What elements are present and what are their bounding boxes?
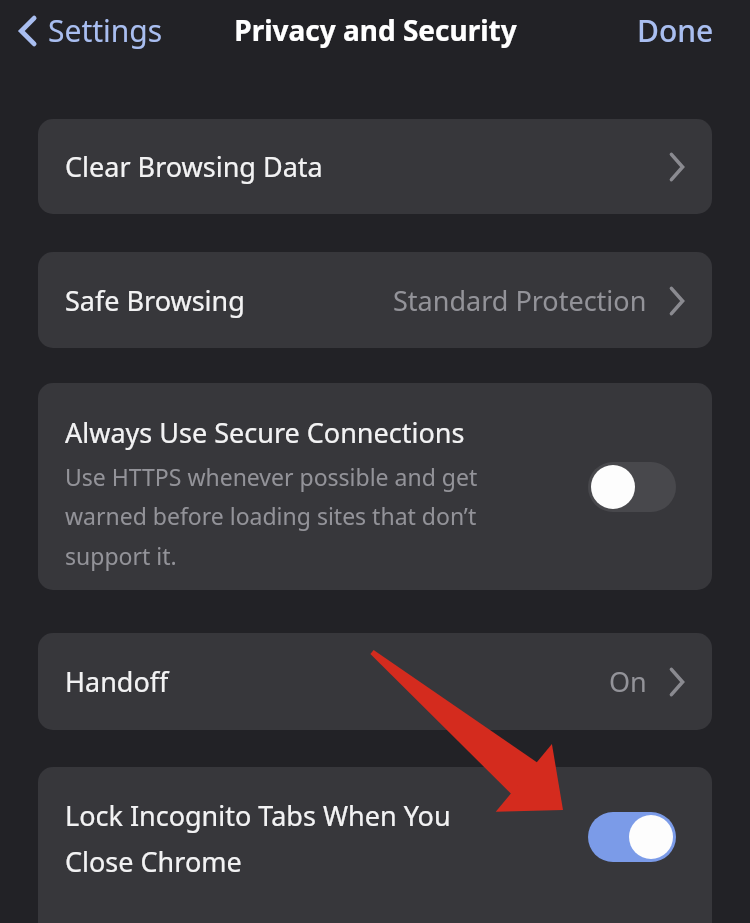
button[interactable]: Lock Incognito Tabs When You Close Chrom… [38, 767, 712, 923]
staticText: Safe Browsing [65, 282, 245, 319]
staticText: On [609, 663, 647, 700]
button[interactable]: Settings [14, 10, 163, 51]
button[interactable]: Safe Browsing [38, 252, 712, 348]
staticText: Settings [48, 10, 163, 51]
staticText: Standard Protection [393, 282, 647, 319]
button[interactable]: Done [637, 10, 750, 51]
button[interactable]: Toggle on [588, 812, 676, 862]
staticText: Handoff [65, 663, 169, 700]
button[interactable]: Toggle off [588, 462, 676, 512]
staticText: Clear Browsing Data [65, 148, 323, 185]
staticText: Lock Incognito Tabs When You Close Chrom… [65, 797, 505, 880]
staticText: Use HTTPS whenever possible and get warn… [65, 461, 535, 572]
button[interactable]: Always Use Secure Connections [38, 383, 712, 590]
staticText: Privacy and Security [234, 11, 517, 49]
button[interactable]: Handoff [38, 633, 712, 730]
staticText: Always Use Secure Connections [65, 414, 465, 451]
button[interactable]: Clear Browsing Data [38, 119, 712, 214]
